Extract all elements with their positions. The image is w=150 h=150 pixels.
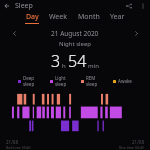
staticText: Month bbox=[78, 12, 100, 22]
staticText: Year bbox=[110, 12, 125, 22]
staticText: Night sleep bbox=[0, 40, 150, 48]
staticText: min bbox=[88, 62, 99, 70]
button[interactable]: More options bbox=[136, 0, 150, 12]
button[interactable]: Light bbox=[50, 75, 67, 87]
staticText: Sleep bbox=[15, 1, 33, 11]
button[interactable]: Next day bbox=[130, 27, 142, 39]
staticText: Rise time 04:45 bbox=[119, 145, 144, 150]
button[interactable]: Week bbox=[44, 12, 73, 24]
button[interactable]: Back bbox=[0, 0, 14, 12]
button[interactable]: REM bbox=[81, 75, 98, 87]
button[interactable]: Sleep stages chart bbox=[10, 91, 140, 139]
button[interactable]: Share bbox=[122, 0, 136, 12]
staticText: sleep bbox=[23, 81, 35, 87]
staticText: h bbox=[62, 62, 66, 70]
staticText: 21/08 bbox=[6, 139, 18, 145]
staticText: sleep bbox=[86, 81, 98, 87]
button[interactable]: Previous day bbox=[8, 27, 20, 39]
button[interactable]: Deep bbox=[18, 75, 35, 87]
staticText: Week bbox=[49, 12, 68, 22]
button[interactable]: Day bbox=[20, 12, 44, 24]
staticText: 3 bbox=[51, 50, 61, 72]
staticText: 54 bbox=[68, 50, 87, 72]
staticText: sleep bbox=[55, 81, 67, 87]
staticText: 21 August 2020 bbox=[51, 29, 99, 38]
button[interactable]: Awake bbox=[113, 78, 132, 84]
staticText: 21/08 bbox=[132, 139, 144, 145]
staticText: Awake bbox=[118, 78, 132, 84]
staticText: Deep bbox=[23, 75, 35, 81]
button[interactable]: Month bbox=[73, 12, 105, 24]
button[interactable]: Year bbox=[105, 12, 130, 24]
staticText: Day bbox=[26, 12, 39, 22]
staticText: Bed time 00:40 bbox=[6, 145, 31, 150]
staticText: Light bbox=[55, 75, 66, 81]
staticText: REM bbox=[86, 75, 96, 81]
